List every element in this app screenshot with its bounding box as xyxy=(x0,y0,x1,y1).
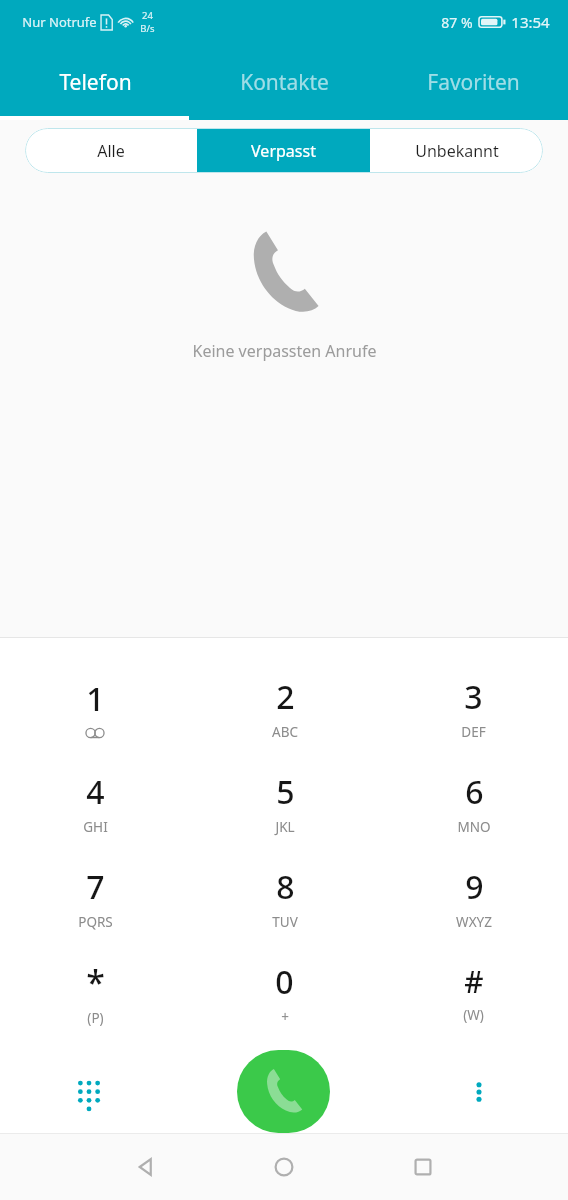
button[interactable]: * xyxy=(0,945,190,1040)
staticText: ABC xyxy=(272,723,298,741)
button[interactable]: More options xyxy=(390,1050,568,1133)
staticText: * xyxy=(86,959,105,1005)
button[interactable]: Home xyxy=(214,1134,353,1200)
staticText: Favoriten xyxy=(427,68,520,97)
staticText: DEF xyxy=(461,723,486,741)
button[interactable]: Call xyxy=(237,1050,330,1133)
staticText: Nur Notrufe xyxy=(22,13,97,31)
staticText: WXYZ xyxy=(456,913,492,931)
button[interactable]: 0 xyxy=(190,945,379,1040)
button[interactable]: 1 xyxy=(0,660,190,755)
button[interactable]: Unbekannt xyxy=(370,128,543,173)
staticText: B/s xyxy=(140,22,155,35)
button[interactable]: 2 xyxy=(190,660,379,755)
staticText: Telefon xyxy=(59,68,132,97)
button[interactable]: Verpasst xyxy=(197,128,370,173)
staticText: 87 % xyxy=(441,13,473,32)
staticText: Unbekannt xyxy=(415,140,499,162)
staticText: # xyxy=(464,961,484,1002)
staticText: Keine verpassten Anrufe xyxy=(192,340,377,362)
staticText: 6 xyxy=(465,770,484,814)
button[interactable]: Kontakte xyxy=(190,44,379,120)
staticText: + xyxy=(281,1008,289,1026)
button[interactable]: Alle xyxy=(25,128,197,173)
staticText: 4 xyxy=(86,770,105,814)
staticText: 13:54 xyxy=(511,12,550,32)
button[interactable]: Favoriten xyxy=(379,44,568,120)
staticText: 5 xyxy=(276,770,295,814)
staticText: PQRS xyxy=(78,913,113,931)
staticText: (W) xyxy=(463,1006,484,1024)
button[interactable]: 8 xyxy=(190,850,379,945)
staticText: Alle xyxy=(97,140,125,162)
button[interactable]: # xyxy=(379,945,568,1040)
staticText: 1 xyxy=(86,677,105,721)
staticText: 24 xyxy=(142,9,153,22)
staticText: GHI xyxy=(83,818,108,836)
staticText: 9 xyxy=(465,865,484,909)
staticText: 0 xyxy=(275,960,294,1004)
button[interactable]: Telefon xyxy=(0,44,190,120)
button[interactable]: 9 xyxy=(379,850,568,945)
button[interactable]: Dialpad xyxy=(0,1050,177,1133)
staticText: MNO xyxy=(457,818,491,836)
staticText: 3 xyxy=(464,675,483,719)
staticText: 7 xyxy=(86,865,105,909)
button[interactable]: 7 xyxy=(0,850,190,945)
button[interactable]: Back xyxy=(75,1134,214,1200)
staticText: 2 xyxy=(276,675,295,719)
staticText: TUV xyxy=(272,913,298,931)
button[interactable]: 6 xyxy=(379,755,568,850)
staticText: 8 xyxy=(276,865,295,909)
staticText: Kontakte xyxy=(240,68,329,97)
button[interactable]: Recent apps xyxy=(353,1134,492,1200)
staticText: JKL xyxy=(275,818,295,836)
staticText: Verpasst xyxy=(251,140,316,162)
button[interactable]: 5 xyxy=(190,755,379,850)
staticText: (P) xyxy=(87,1009,104,1027)
button[interactable]: 3 xyxy=(379,660,568,755)
button[interactable]: 4 xyxy=(0,755,190,850)
